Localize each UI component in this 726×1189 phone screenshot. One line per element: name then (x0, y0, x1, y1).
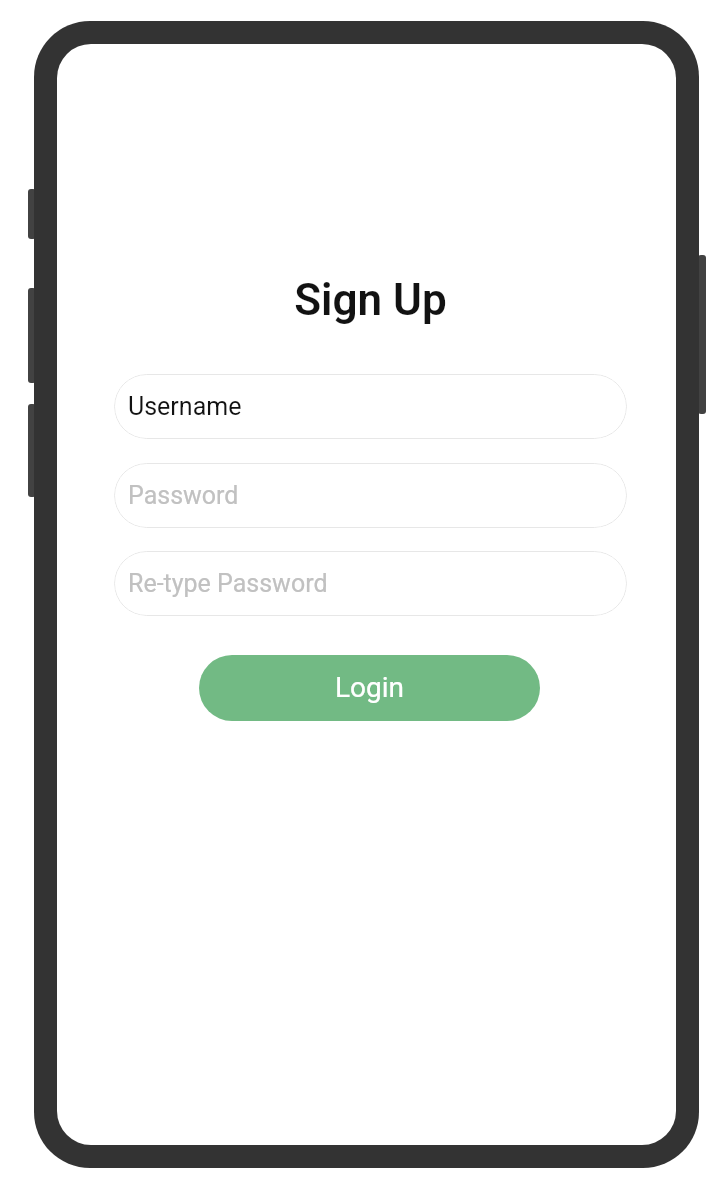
button[interactable]: Username (114, 374, 627, 439)
button[interactable]: Hardware button (28, 288, 36, 383)
staticText: Username (128, 392, 242, 421)
staticText: Login (335, 671, 405, 704)
button[interactable]: Password (114, 463, 627, 528)
button[interactable]: Login (199, 655, 540, 721)
staticText: Password (128, 481, 239, 510)
button[interactable]: Re-type Password (114, 551, 627, 616)
button[interactable]: Hardware button (698, 255, 706, 414)
button[interactable]: Hardware button (28, 404, 36, 497)
staticText: Re-type Password (128, 569, 328, 598)
staticText: Sign Up (294, 274, 447, 326)
button[interactable]: Hardware button (28, 189, 36, 239)
